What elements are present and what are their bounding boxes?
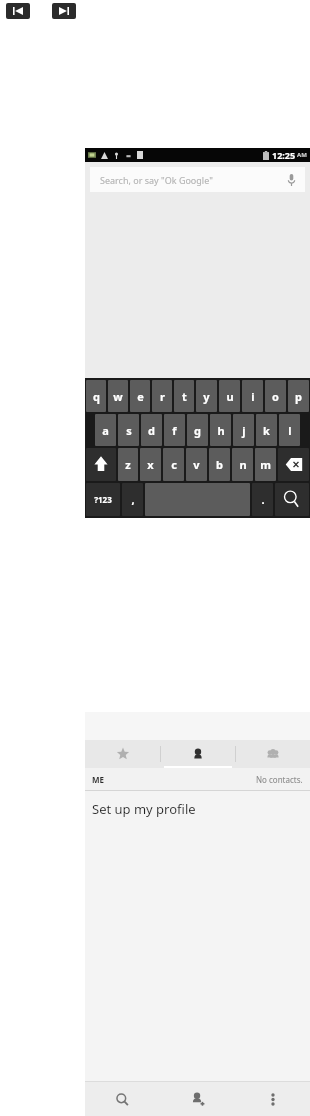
staticText: c	[171, 457, 177, 472]
button[interactable]: k	[256, 414, 277, 446]
button[interactable]: Shift	[86, 448, 116, 481]
staticText: x	[147, 457, 154, 472]
staticText: i	[251, 389, 255, 404]
button[interactable]: Search	[85, 1082, 160, 1116]
staticText: p	[295, 389, 302, 404]
staticText: e	[137, 389, 144, 404]
staticText: m	[260, 457, 271, 472]
button[interactable]: f	[164, 414, 185, 446]
button[interactable]: c	[163, 448, 184, 481]
button[interactable]: j	[233, 414, 254, 446]
button[interactable]: x	[140, 448, 161, 481]
staticText: Set up my profile	[92, 800, 196, 818]
button[interactable]: s	[118, 414, 139, 446]
button[interactable]: Search	[275, 483, 309, 516]
button[interactable]: Backspace	[278, 448, 309, 481]
button[interactable]: g	[187, 414, 208, 446]
button[interactable]: y	[196, 380, 217, 412]
button[interactable]: .	[252, 483, 273, 516]
button[interactable]: e	[130, 380, 150, 412]
button[interactable]: t	[174, 380, 194, 412]
staticText: s	[126, 423, 132, 438]
staticText: l	[288, 423, 292, 438]
button[interactable]: n	[232, 448, 253, 481]
button[interactable]: p	[288, 380, 309, 412]
button[interactable]: a	[95, 414, 116, 446]
staticText: u	[226, 389, 234, 404]
button[interactable]: ?123	[86, 483, 120, 516]
staticText: d	[148, 423, 155, 438]
staticText: Search, or say "Ok Google"	[100, 174, 213, 186]
staticText: o	[272, 389, 279, 404]
button[interactable]: m	[255, 448, 276, 481]
button[interactable]: v	[186, 448, 207, 481]
button[interactable]: Add contact	[160, 1082, 235, 1116]
staticText: k	[263, 423, 270, 438]
button[interactable]: q	[86, 380, 106, 412]
button[interactable]: h	[210, 414, 231, 446]
button[interactable]: Search, or say "Ok Google"	[90, 167, 305, 192]
button[interactable]: u	[219, 380, 240, 412]
button[interactable]: Voice search	[281, 170, 301, 190]
staticText: AM	[297, 151, 307, 159]
staticText: ,	[131, 492, 135, 507]
button[interactable]: More options	[235, 1082, 310, 1116]
staticText: v	[193, 457, 200, 472]
staticText: 12:25	[272, 149, 296, 161]
staticText: b	[216, 457, 223, 472]
staticText: z	[125, 457, 131, 472]
button[interactable]: b	[209, 448, 230, 481]
staticText: f	[172, 423, 177, 438]
staticText: y	[203, 389, 210, 404]
button[interactable]: o	[265, 380, 286, 412]
button[interactable]: Set up my profile	[85, 791, 310, 827]
staticText: j	[242, 423, 246, 438]
button[interactable]: r	[152, 380, 172, 412]
staticText: g	[194, 423, 201, 438]
button[interactable]: w	[108, 380, 128, 412]
staticText: No contacts.	[256, 774, 303, 785]
button[interactable]: l	[279, 414, 300, 446]
staticText: t	[182, 389, 187, 404]
staticText: n	[239, 457, 247, 472]
button[interactable]: Next track	[52, 3, 76, 19]
button[interactable]: z	[118, 448, 138, 481]
button[interactable]: Groups	[236, 740, 310, 768]
staticText: ?123	[94, 494, 112, 505]
staticText: r	[160, 389, 165, 404]
staticText: ME	[92, 774, 105, 785]
button[interactable]: Previous track	[6, 3, 30, 19]
button[interactable]: d	[141, 414, 162, 446]
staticText: q	[93, 389, 100, 404]
button[interactable]: i	[242, 380, 263, 412]
button[interactable]: ,	[122, 483, 143, 516]
button[interactable]: Contacts	[161, 740, 235, 768]
staticText: a	[102, 423, 109, 438]
button[interactable]: Favorites	[85, 740, 160, 768]
staticText: .	[261, 492, 265, 507]
staticText: h	[217, 423, 225, 438]
staticText: w	[113, 389, 123, 404]
